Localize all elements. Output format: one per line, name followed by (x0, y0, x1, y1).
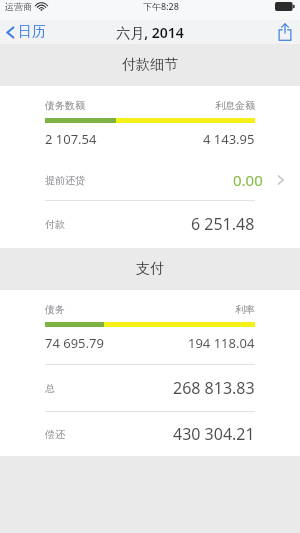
staticText: 0.00 (233, 170, 263, 190)
staticText: 下午8:28 (143, 0, 179, 12)
staticText: 付款细节 (122, 56, 178, 74)
button[interactable]: 提前还贷 (0, 160, 300, 200)
staticText: 提前还贷 (45, 174, 85, 187)
staticText: 支付 (136, 260, 164, 278)
staticText: 4 143.95 (203, 130, 255, 148)
staticText: 6 251.48 (191, 213, 255, 235)
button[interactable]: Share (270, 21, 300, 43)
button[interactable]: 总 (0, 365, 300, 411)
staticText: 268 813.83 (173, 377, 255, 399)
staticText: 总 (45, 382, 55, 395)
button[interactable]: 偿还 (0, 412, 300, 456)
staticText: 债务数额 (45, 99, 85, 112)
button[interactable]: 付款 (0, 201, 300, 247)
staticText: 利率 (235, 303, 255, 316)
staticText: 付款 (45, 218, 65, 231)
staticText: 运营商 (5, 1, 32, 12)
staticText: 六月, 2014 (116, 23, 184, 42)
staticText: 偿还 (45, 428, 65, 441)
staticText: 74 695.79 (45, 334, 104, 352)
staticText: 日历 (18, 23, 46, 41)
staticText: 194 118.04 (188, 334, 255, 352)
staticText: 2 107.54 (45, 130, 97, 148)
button[interactable]: 日历 (0, 20, 54, 44)
staticText: 430 304.21 (173, 423, 255, 445)
staticText: 利息金额 (215, 99, 255, 112)
staticText: 债务 (45, 303, 65, 316)
